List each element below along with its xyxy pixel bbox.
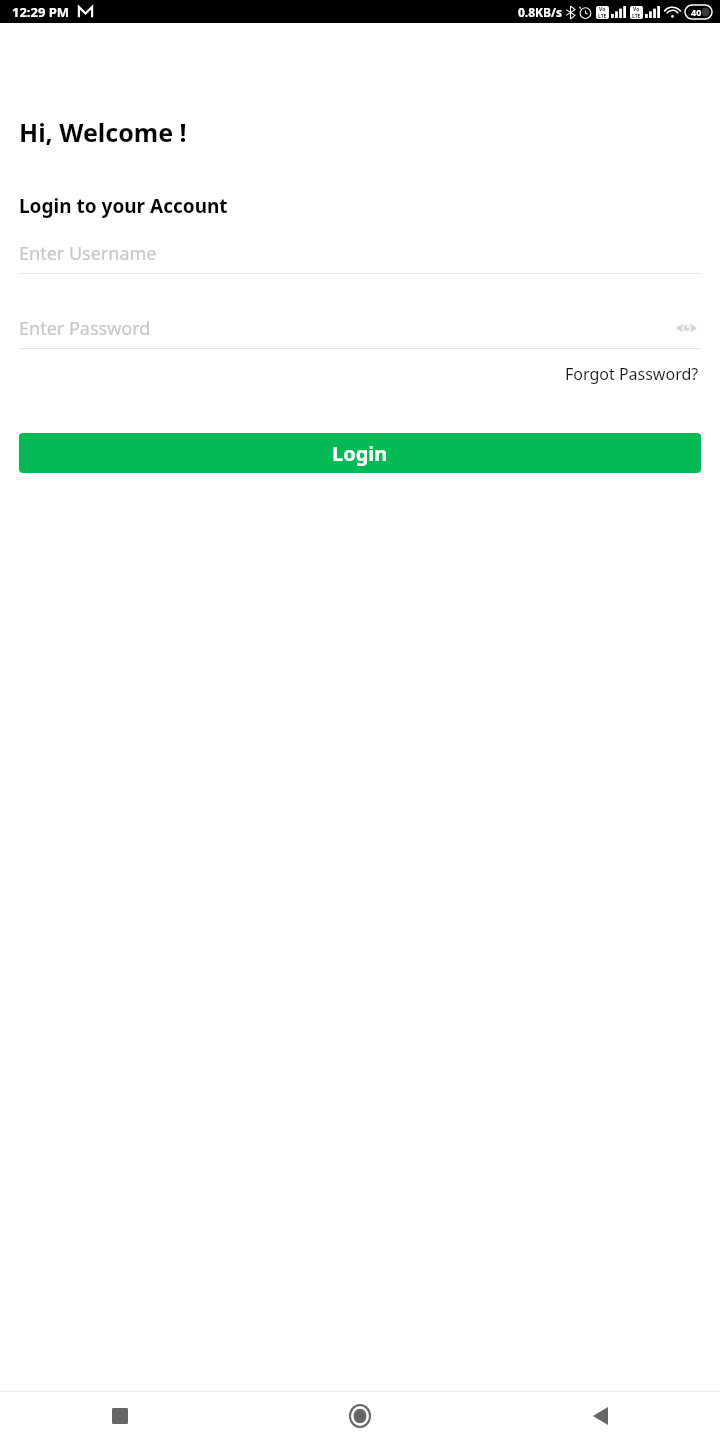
button[interactable]: Back [480, 1392, 720, 1440]
staticText: Enter Username [19, 241, 157, 266]
staticText: Vo [599, 6, 606, 13]
staticText: 12:29 PM [12, 3, 70, 21]
button[interactable]: Home [240, 1392, 480, 1440]
staticText: 0.8KB/s [518, 4, 563, 20]
button[interactable]: Show password [671, 313, 701, 343]
button[interactable]: Enter Password [19, 308, 701, 349]
staticText: Login to your Account [19, 193, 228, 219]
staticText: LTE [632, 13, 641, 19]
staticText: Hi, Welcome ! [19, 115, 187, 149]
staticText: Forgot Password? [565, 363, 699, 385]
button[interactable]: Forgot Password? [563, 359, 701, 389]
staticText: Vo [633, 6, 640, 13]
staticText: Login [332, 440, 388, 467]
button[interactable]: Recents [0, 1392, 240, 1440]
button[interactable]: Login [19, 433, 701, 473]
staticText: Enter Password [19, 316, 151, 341]
staticText: LTE [598, 13, 607, 19]
staticText: 40 [691, 6, 702, 18]
button[interactable]: Enter Username [19, 233, 701, 274]
